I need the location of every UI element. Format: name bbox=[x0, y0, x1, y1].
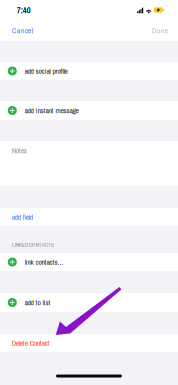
staticText: add instant message bbox=[25, 105, 79, 116]
staticText: add field bbox=[12, 212, 33, 222]
staticText: Done bbox=[152, 25, 169, 36]
staticText: Cancel bbox=[12, 25, 33, 36]
button[interactable]: add field bbox=[0, 208, 178, 226]
staticText: add social profile bbox=[25, 66, 68, 76]
staticText: link contacts... bbox=[25, 257, 64, 267]
button[interactable]: Delete Contact bbox=[0, 334, 178, 352]
staticText: add to list bbox=[25, 297, 51, 308]
button[interactable]: add to list bbox=[0, 293, 178, 312]
button[interactable]: Done bbox=[144, 20, 178, 41]
button[interactable]: add social profile bbox=[0, 62, 178, 80]
button[interactable]: Cancel bbox=[0, 20, 41, 41]
staticText: Delete Contact bbox=[12, 338, 50, 348]
button[interactable]: link contacts... bbox=[0, 253, 178, 271]
staticText: Notes bbox=[12, 145, 27, 156]
staticText: 7:40 bbox=[17, 4, 31, 16]
staticText: LINKED CONTACTS bbox=[12, 241, 54, 248]
button[interactable]: add instant message bbox=[0, 101, 178, 120]
